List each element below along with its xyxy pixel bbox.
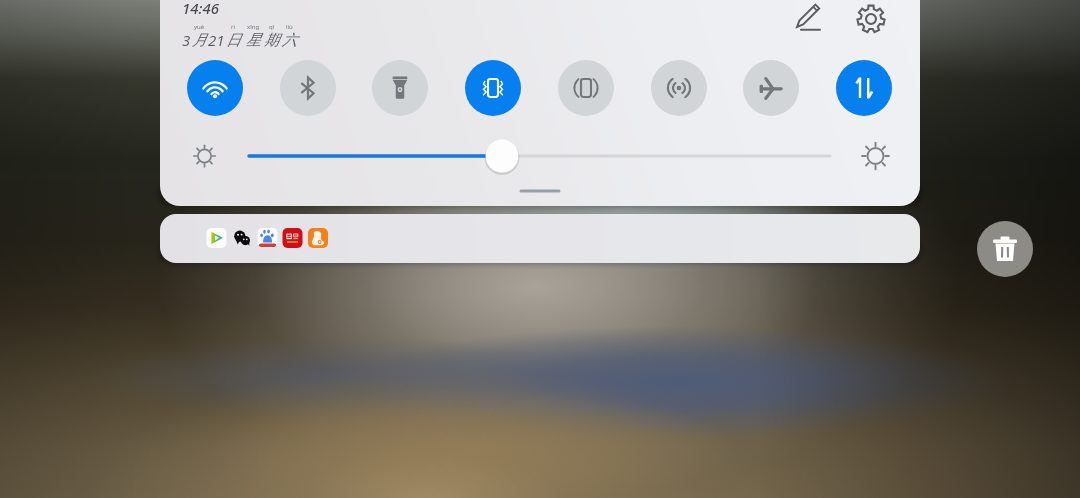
button[interactable]: Wi-Fi xyxy=(187,60,243,116)
button[interactable]: Hotspot xyxy=(651,60,707,116)
staticText: 21 xyxy=(208,30,225,50)
button[interactable]: Tencent Video xyxy=(206,228,227,249)
button[interactable]: Mobile data xyxy=(836,60,892,116)
button[interactable]: UC Browser xyxy=(308,228,329,249)
staticText: 期 xyxy=(264,31,279,50)
button[interactable]: Baidu xyxy=(257,228,278,249)
staticText: 月 xyxy=(192,31,207,50)
staticText: 星 xyxy=(246,31,261,50)
staticText: 日 xyxy=(226,31,241,50)
button[interactable]: Delete xyxy=(977,221,1033,277)
staticText: 六 xyxy=(282,31,297,50)
staticText: yuè xyxy=(194,23,205,31)
button[interactable]: 14:46 xyxy=(182,0,298,50)
button[interactable]: Silent xyxy=(558,60,614,116)
button[interactable]: Bluetooth xyxy=(280,60,336,116)
button[interactable]: NetEase News xyxy=(282,228,303,249)
staticText: xīng xyxy=(247,23,260,31)
button[interactable]: Edit xyxy=(790,0,830,40)
button[interactable]: Brightness xyxy=(190,133,890,179)
staticText: liù xyxy=(286,23,293,31)
button[interactable]: Vibrate xyxy=(465,60,521,116)
button[interactable]: WeChat xyxy=(232,228,253,249)
button[interactable]: Settings xyxy=(850,0,892,40)
staticText: 3 xyxy=(182,30,191,50)
staticText: 14:46 xyxy=(182,0,220,18)
staticText: qī xyxy=(269,23,275,31)
button[interactable]: Airplane mode xyxy=(743,60,799,116)
staticText: rì xyxy=(231,23,236,31)
button[interactable]: Flashlight xyxy=(372,60,428,116)
